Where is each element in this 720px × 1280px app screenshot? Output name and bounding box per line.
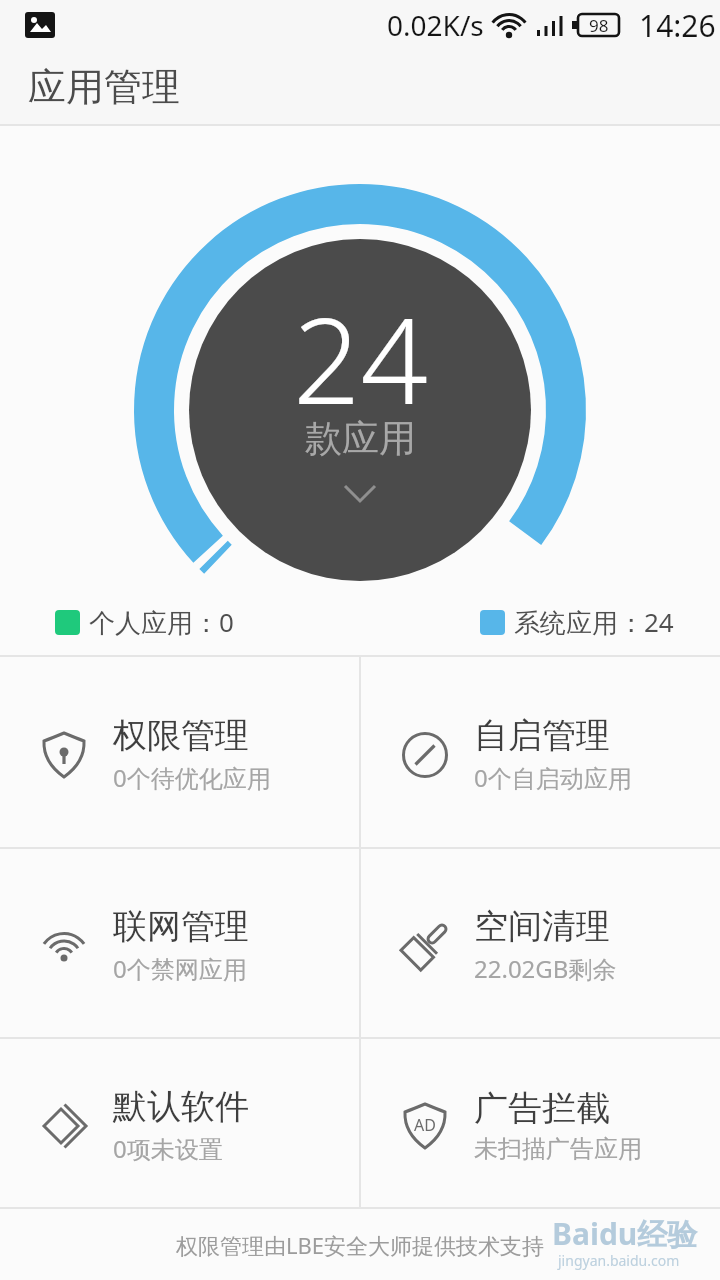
staticText: 默认软件 bbox=[113, 1085, 249, 1128]
staticText: 0个自启动应用 bbox=[474, 761, 632, 794]
button[interactable]: 联网管理 bbox=[0, 849, 359, 1037]
button[interactable]: 权限管理 bbox=[0, 657, 359, 847]
staticText: Baidu经验 bbox=[552, 1213, 698, 1254]
staticText: jingyan.baidu.com bbox=[558, 1251, 680, 1270]
staticText: 0个禁网应用 bbox=[113, 952, 247, 985]
staticText: 广告拦截 bbox=[474, 1087, 610, 1130]
staticText: 自启管理 bbox=[474, 714, 610, 757]
button[interactable]: AD bbox=[361, 1039, 720, 1207]
staticText: 未扫描广告应用 bbox=[474, 1134, 642, 1164]
staticText: 0个待优化应用 bbox=[113, 761, 271, 794]
button[interactable]: 空间清理 bbox=[361, 849, 720, 1037]
staticText: 个人应用：0 bbox=[89, 604, 234, 640]
staticText: 空间清理 bbox=[474, 905, 610, 948]
staticText: 24 bbox=[293, 278, 428, 438]
staticText: 0.02K/s bbox=[387, 6, 484, 44]
staticText: 0项未设置 bbox=[113, 1132, 223, 1165]
staticText: 14:26 bbox=[639, 5, 716, 46]
staticText: AD bbox=[414, 1114, 436, 1136]
staticText: 权限管理由LBE安全大师提供技术支持 bbox=[176, 1230, 545, 1260]
staticText: 款应用 bbox=[305, 415, 416, 462]
button[interactable]: 系统应用：24 bbox=[480, 604, 674, 640]
button[interactable]: 个人应用：0 bbox=[55, 604, 234, 640]
button[interactable]: 自启管理 bbox=[361, 657, 720, 847]
staticText: 联网管理 bbox=[113, 905, 249, 948]
staticText: 22.02GB剩余 bbox=[474, 952, 617, 985]
staticText: 系统应用：24 bbox=[514, 604, 674, 640]
button[interactable]: 默认软件 bbox=[0, 1039, 359, 1207]
staticText: 权限管理 bbox=[113, 714, 249, 757]
staticText: 98 bbox=[589, 14, 609, 37]
staticText: 应用管理 bbox=[28, 63, 180, 111]
